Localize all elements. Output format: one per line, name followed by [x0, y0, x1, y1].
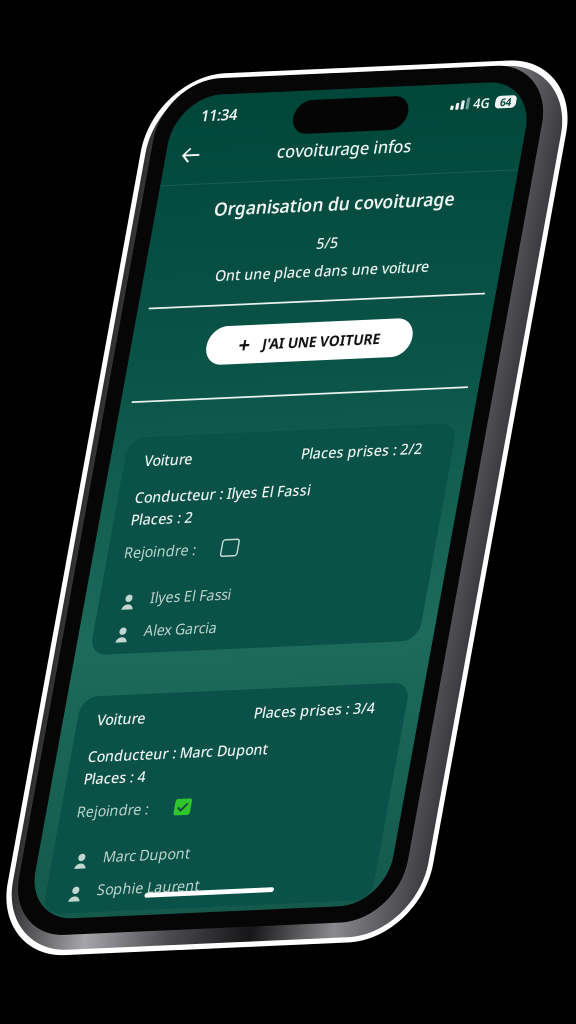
staticText: Alex Garcia [100, 566, 180, 587]
staticText: Conducteur : Marc Dupont [63, 695, 261, 716]
staticText: Places prises : 2/2 [238, 389, 371, 410]
staticText: Ilyes El Fassi [100, 532, 189, 553]
staticText: Organisation du covoiturage [93, 128, 357, 154]
staticText: Voiture [66, 389, 119, 410]
staticText: Marc Dupont [100, 800, 196, 821]
staticText: covoiturage infos [151, 72, 299, 96]
button[interactable]: Rejoindre : [44, 738, 405, 772]
staticText: Sophie Laurent [100, 834, 213, 855]
staticText: Conducteur : Ilyes El Fassi [63, 427, 256, 448]
staticText: Ont une place dans une voiture [107, 200, 342, 221]
staticText: Places : 4 [63, 718, 131, 739]
staticText: Rejoindre : [62, 484, 141, 505]
staticText: J'AI UNE VOITURE [173, 273, 302, 294]
staticText: Rejoindre : [62, 752, 141, 773]
button[interactable]: Rejoindre : [44, 470, 405, 504]
button[interactable]: + [112, 264, 338, 304]
staticText: 5/5 [213, 171, 237, 192]
staticText: Places : 2 [63, 450, 131, 471]
staticText: Voiture [66, 657, 119, 678]
